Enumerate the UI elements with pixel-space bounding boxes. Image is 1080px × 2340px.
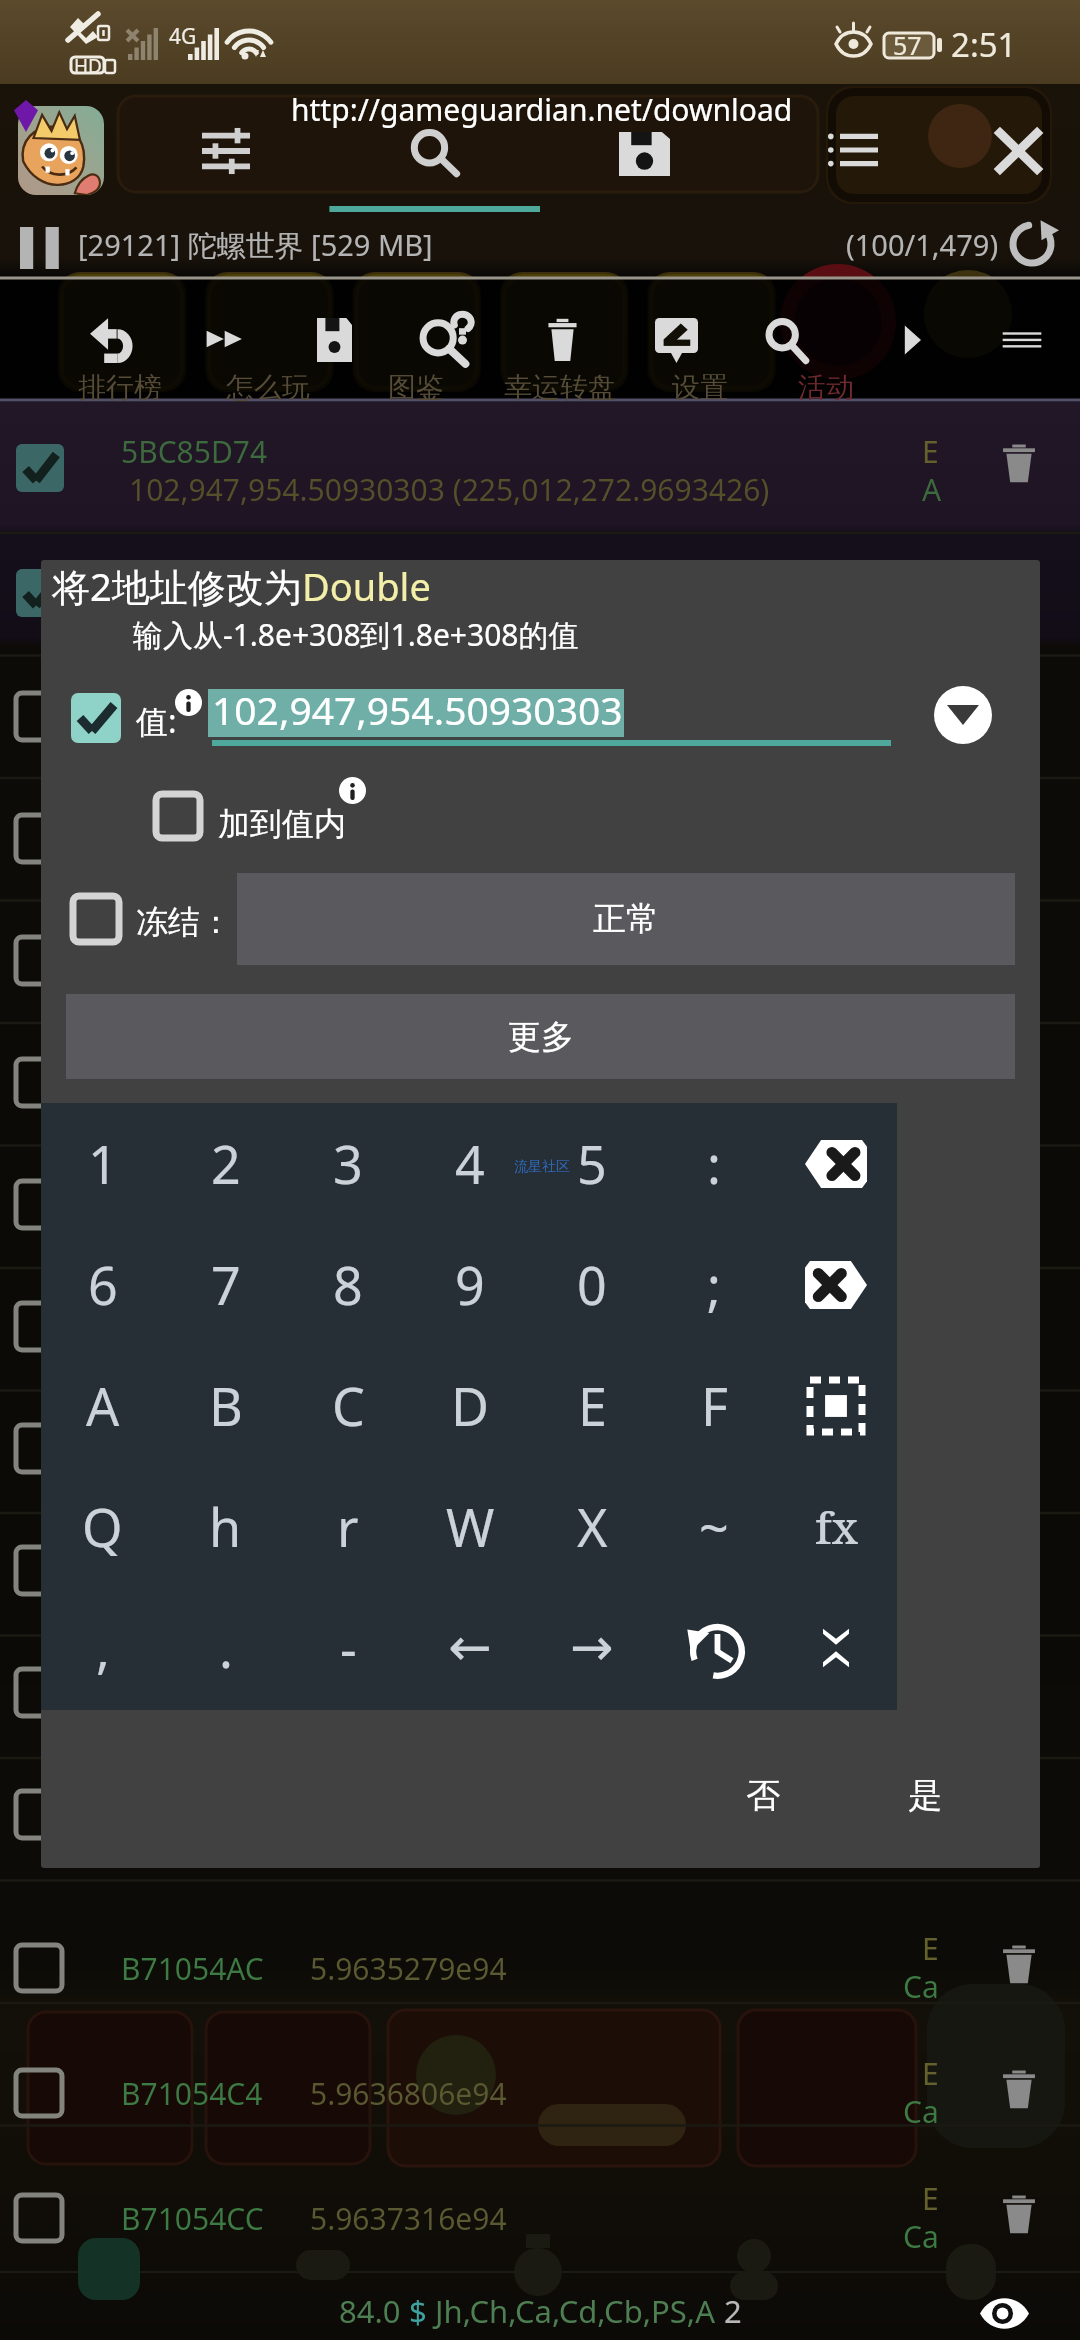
button[interactable]: Undo (64, 294, 159, 385)
button[interactable] (0, 777, 1080, 899)
button[interactable]: 4 (409, 1103, 531, 1224)
button[interactable]: Pause (8, 216, 72, 280)
button[interactable]: Search memory (741, 296, 833, 384)
button[interactable]: Freeze (73, 896, 119, 942)
button[interactable]: Menu (975, 302, 1069, 378)
button[interactable]: Delete entry (992, 1937, 1046, 1991)
staticText: B (209, 1370, 243, 1441)
button[interactable]: 0 (531, 1224, 653, 1345)
button[interactable]: fx (775, 1466, 897, 1587)
staticText: D (451, 1370, 489, 1441)
staticText: 5.9637316e94 (310, 2198, 507, 2239)
staticText: ← (448, 1617, 492, 1678)
button[interactable]: D (409, 1345, 531, 1466)
button[interactable]: - (287, 1587, 409, 1708)
button[interactable]: Value checkbox (71, 693, 121, 743)
button[interactable] (0, 899, 1080, 1021)
button[interactable] (0, 1631, 1080, 1753)
button[interactable]: Search again (393, 290, 503, 388)
button[interactable]: B71054CC (0, 2193, 1080, 2313)
button[interactable]: : (653, 1103, 775, 1224)
button[interactable]: GameGuardian app icon (18, 106, 104, 195)
button[interactable]: ; (653, 1224, 775, 1345)
button[interactable] (0, 1143, 1080, 1265)
button[interactable]: Save (597, 110, 692, 198)
staticText: 4 (455, 1128, 485, 1199)
staticText: C (332, 1370, 365, 1441)
button[interactable]: ~ (653, 1466, 775, 1587)
button[interactable]: Refresh (1002, 214, 1062, 274)
button[interactable]: A (41, 1345, 164, 1466)
button[interactable] (0, 1753, 1080, 1875)
button[interactable]: B71054C4 (0, 2068, 1080, 2188)
button[interactable]: Play (871, 298, 953, 382)
button[interactable]: Row selected (16, 569, 64, 617)
staticText: B71054AC (121, 1948, 264, 1989)
button[interactable]: 6 (41, 1224, 164, 1345)
staticText: 1 (88, 1128, 118, 1199)
button[interactable] (0, 1021, 1080, 1143)
button[interactable]: Expand value options (934, 686, 992, 744)
button[interactable]: E (531, 1345, 653, 1466)
button[interactable]: 1 (41, 1103, 164, 1224)
button[interactable]: Toggle overlay visibility (972, 2288, 1036, 2338)
button[interactable]: Add to value (156, 794, 200, 838)
button[interactable]: sel (775, 1345, 897, 1466)
button[interactable]: 是 (882, 1760, 968, 1831)
staticText: HD (74, 53, 102, 79)
button[interactable]: 7 (164, 1224, 287, 1345)
button[interactable]: 2 (164, 1103, 287, 1224)
button[interactable]: Search (390, 109, 480, 197)
button[interactable]: 否 (720, 1760, 806, 1831)
button[interactable]: Close (978, 111, 1059, 191)
button[interactable]: 5BC85D74 (0, 402, 1080, 527)
button[interactable]: right (531, 1587, 653, 1708)
button[interactable]: Q (41, 1466, 164, 1587)
button[interactable]: Delete entry (992, 2187, 1046, 2241)
button[interactable] (0, 1387, 1080, 1509)
button[interactable]: X (531, 1466, 653, 1587)
button[interactable]: 5 (531, 1103, 653, 1224)
button[interactable]: left (409, 1587, 531, 1708)
button[interactable]: Edit (629, 296, 724, 385)
button[interactable]: F (653, 1345, 775, 1466)
staticText: E (922, 2178, 939, 2219)
button[interactable]: bs1 (775, 1103, 897, 1224)
button[interactable]: hist (653, 1587, 775, 1708)
button[interactable]: Sliders (180, 105, 272, 197)
button[interactable]: Delete (518, 294, 607, 385)
button[interactable] (0, 1265, 1080, 1387)
button[interactable]: Delete entry (992, 2062, 1046, 2116)
button[interactable]: r (287, 1466, 409, 1587)
button[interactable]: 9 (409, 1224, 531, 1345)
button[interactable]: Fast forward (179, 301, 272, 377)
staticText: 输入从-1.8e+308到1.8e+308的值 (133, 614, 579, 655)
button[interactable]: 更多 (66, 994, 1015, 1079)
staticText: 是 (908, 1774, 942, 1817)
button[interactable]: h (164, 1466, 287, 1587)
staticText: B71054CC (121, 2198, 264, 2239)
staticText: 更多 (508, 1016, 574, 1058)
button[interactable]: B (164, 1345, 287, 1466)
button[interactable]: Save (291, 296, 378, 384)
button[interactable]: , (41, 1587, 164, 1708)
staticText: [29121] 陀螺世界 [529 MB] (78, 225, 433, 265)
button[interactable]: . (164, 1587, 287, 1708)
button[interactable]: 3 (287, 1103, 409, 1224)
button[interactable]: Delete row (992, 436, 1046, 490)
button[interactable]: 正常 (237, 873, 1015, 965)
button[interactable]: W (409, 1466, 531, 1587)
button[interactable] (0, 655, 1080, 777)
staticText: 值: (136, 699, 177, 743)
button[interactable]: bs2 (775, 1224, 897, 1345)
staticText: 5BC85D74 (121, 431, 268, 472)
button[interactable]: List view (806, 108, 900, 192)
button[interactable] (0, 1509, 1080, 1631)
button[interactable]: down (775, 1587, 897, 1708)
button[interactable]: C (287, 1345, 409, 1466)
staticText: r (337, 1491, 359, 1562)
staticText: Q (82, 1491, 123, 1562)
button[interactable]: 8 (287, 1224, 409, 1345)
button[interactable]: B71054AC (0, 1943, 1080, 2063)
staticText: A (86, 1370, 120, 1441)
